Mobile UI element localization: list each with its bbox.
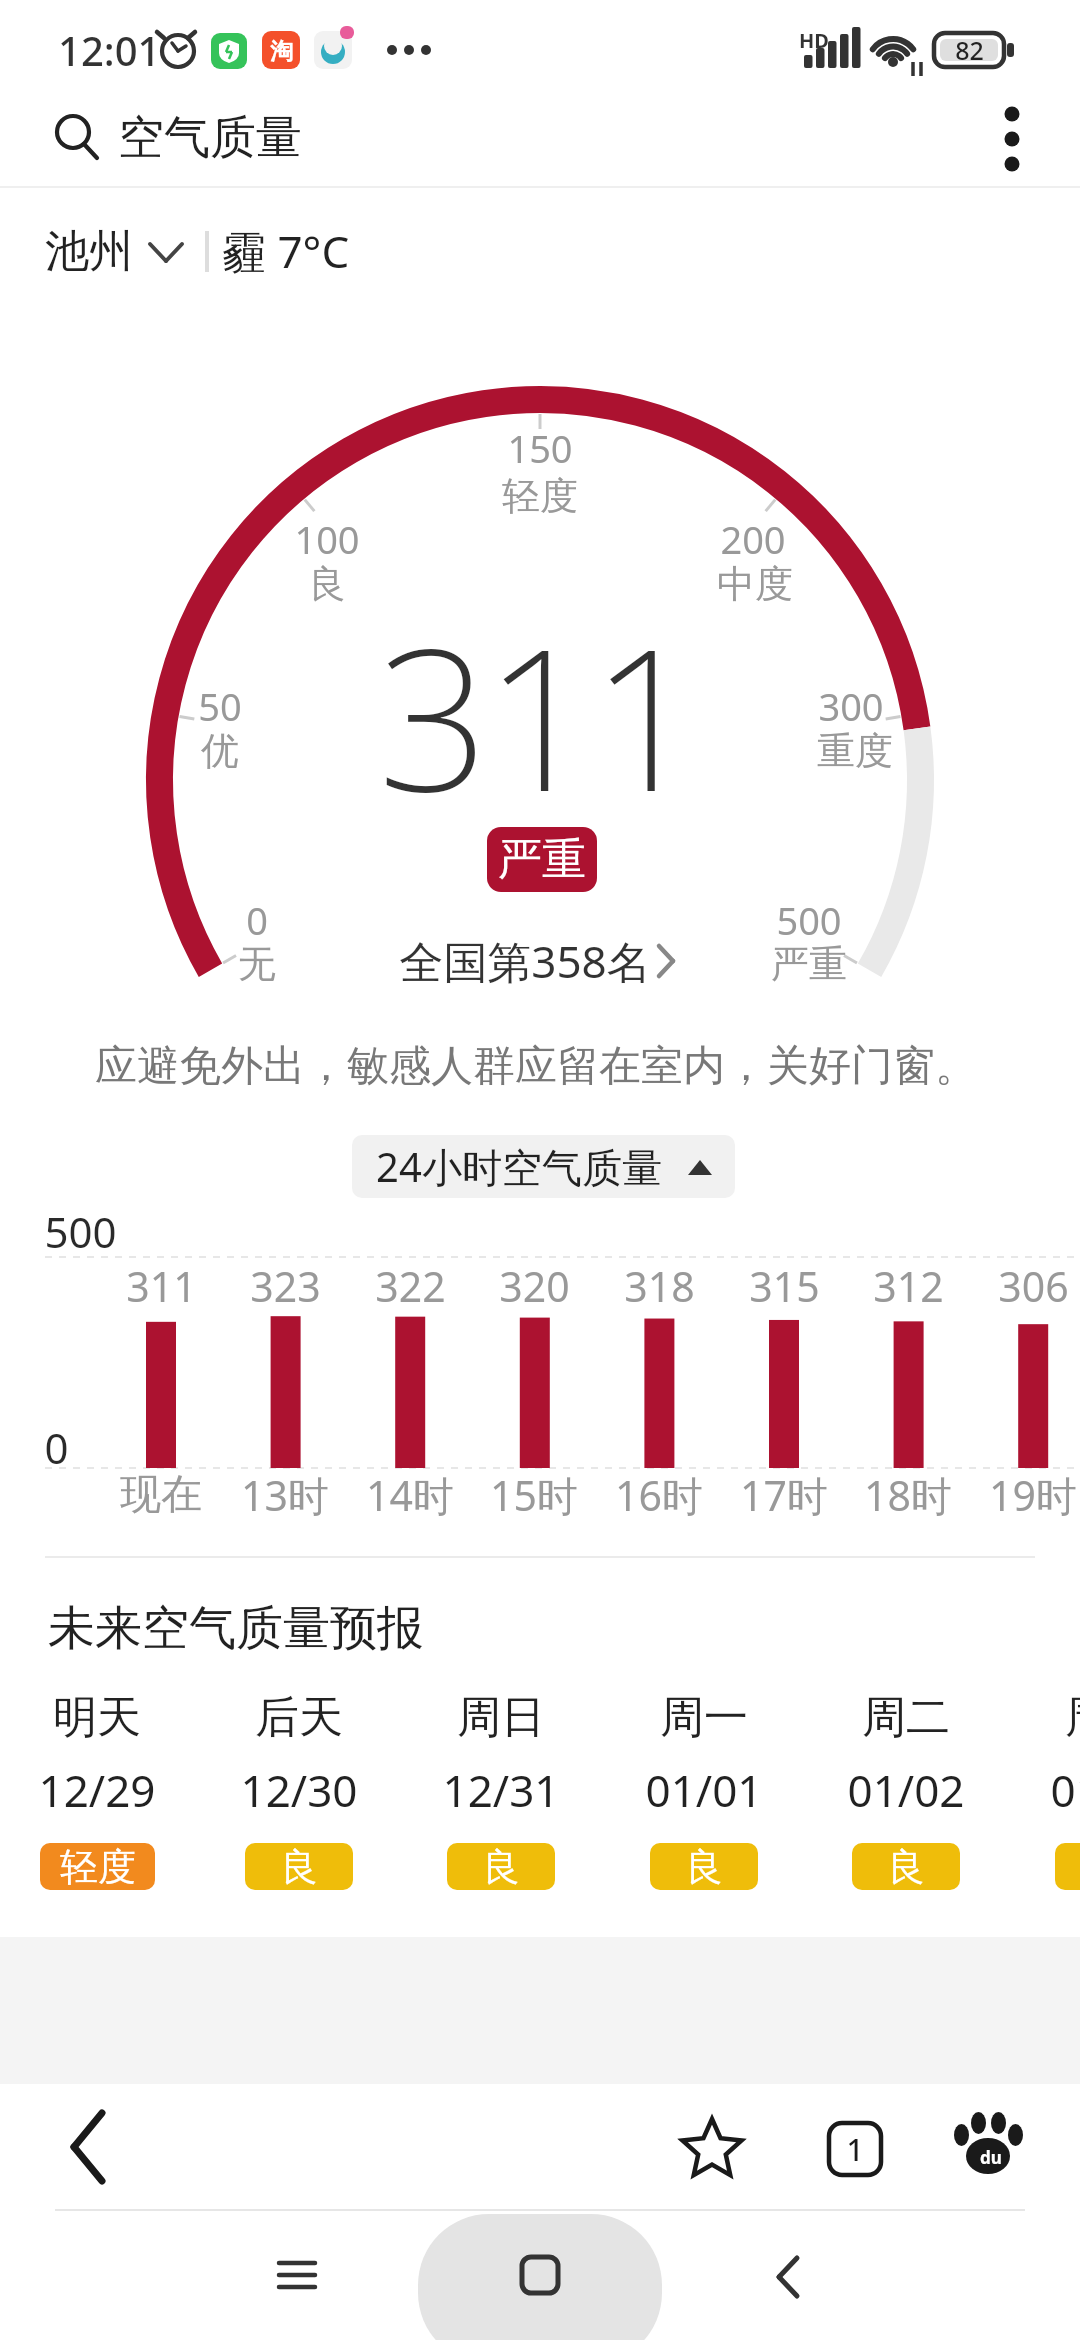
button[interactable] bbox=[975, 95, 1050, 183]
staticText: 19时 bbox=[989, 1467, 1077, 1523]
staticText: 0 bbox=[44, 1419, 69, 1476]
staticText: 中度 bbox=[717, 560, 793, 608]
staticText: 306 bbox=[998, 1258, 1069, 1314]
staticText: 周二 bbox=[862, 1690, 950, 1745]
staticText: 322 bbox=[375, 1258, 446, 1314]
staticText: 明天 bbox=[53, 1690, 141, 1745]
staticText: 01/01 bbox=[645, 1760, 763, 1820]
button[interactable] bbox=[810, 2105, 900, 2195]
staticText: 优 bbox=[201, 727, 239, 775]
staticText: 严重 bbox=[771, 940, 847, 988]
staticText: 320 bbox=[499, 1258, 570, 1314]
staticText: 318 bbox=[624, 1258, 695, 1314]
staticText: 严重 bbox=[498, 832, 586, 887]
staticText: 311 bbox=[377, 581, 698, 848]
staticText: 315 bbox=[749, 1258, 820, 1314]
staticText: 12/30 bbox=[240, 1760, 358, 1820]
staticText: 12/29 bbox=[38, 1760, 156, 1820]
button[interactable] bbox=[45, 2105, 135, 2195]
staticText: 100 bbox=[294, 513, 360, 565]
staticText: 16时 bbox=[615, 1467, 703, 1523]
staticText: 300 bbox=[818, 680, 884, 732]
staticText: 未来空气质量预报 bbox=[48, 1599, 424, 1658]
staticText: 后天 bbox=[255, 1690, 343, 1745]
staticText: 0 bbox=[246, 894, 268, 946]
staticText: 312 bbox=[873, 1258, 944, 1314]
staticText: 轻度 bbox=[60, 1843, 136, 1890]
staticText: 323 bbox=[250, 1258, 321, 1314]
staticText: 全国第358名 bbox=[399, 931, 651, 991]
staticText: du bbox=[980, 2146, 1002, 2169]
button[interactable] bbox=[40, 222, 190, 282]
button[interactable] bbox=[370, 930, 690, 992]
staticText: 轻度 bbox=[502, 472, 578, 520]
button[interactable] bbox=[40, 98, 360, 178]
staticText: 82 bbox=[955, 33, 984, 67]
staticText: 01/02 bbox=[847, 1760, 965, 1820]
button[interactable] bbox=[748, 2235, 828, 2315]
staticText: 15时 bbox=[490, 1467, 578, 1523]
staticText: 良 bbox=[887, 1843, 925, 1890]
staticText: 良 bbox=[280, 1843, 318, 1890]
staticText: 14时 bbox=[366, 1467, 454, 1523]
staticText: 良 bbox=[685, 1843, 723, 1890]
staticText: 500 bbox=[44, 1203, 117, 1260]
staticText: 12:01 bbox=[58, 23, 161, 77]
staticText: 无 bbox=[238, 940, 276, 988]
staticText: 良 bbox=[308, 560, 346, 608]
staticText: 1 bbox=[846, 2129, 864, 2170]
button[interactable] bbox=[667, 2105, 757, 2195]
staticText: 现在 bbox=[120, 1469, 202, 1521]
button[interactable] bbox=[943, 2105, 1033, 2195]
staticText: 150 bbox=[507, 422, 573, 474]
staticText: 池州 bbox=[45, 224, 133, 279]
staticText: 霾 7°C bbox=[222, 221, 350, 281]
staticText: 12/31 bbox=[442, 1760, 560, 1820]
staticText: 周三 bbox=[1065, 1690, 1080, 1745]
staticText: 01/03 bbox=[1050, 1760, 1080, 1820]
staticText: HD bbox=[799, 27, 829, 54]
staticText: 良 bbox=[482, 1843, 520, 1890]
staticText: 应避免外出，敏感人群应留在室内，关好门窗。 bbox=[95, 1040, 977, 1093]
staticText: 13时 bbox=[241, 1467, 329, 1523]
staticText: 空气质量 bbox=[118, 109, 302, 167]
button[interactable] bbox=[257, 2235, 337, 2315]
staticText: 500 bbox=[776, 894, 842, 946]
staticText: 淘 bbox=[270, 37, 293, 66]
button[interactable] bbox=[500, 2235, 580, 2315]
staticText: 周日 bbox=[457, 1690, 545, 1745]
staticText: 17时 bbox=[740, 1467, 828, 1523]
staticText: 周一 bbox=[660, 1690, 748, 1745]
staticText: 200 bbox=[720, 513, 786, 565]
button[interactable] bbox=[352, 1135, 735, 1198]
staticText: 311 bbox=[126, 1258, 197, 1314]
staticText: 24小时空气质量 bbox=[376, 1139, 662, 1194]
staticText: 重度 bbox=[817, 727, 893, 775]
staticText: 18时 bbox=[864, 1467, 952, 1523]
staticText: 50 bbox=[198, 680, 242, 732]
